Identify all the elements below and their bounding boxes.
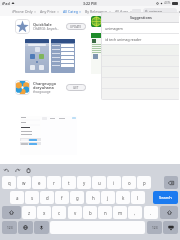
staticText: b	[89, 210, 92, 216]
button[interactable]: Search	[153, 191, 178, 204]
staticText: iPad	[2, 1, 10, 6]
staticText: 3:22 PM	[83, 1, 97, 6]
staticText: k	[122, 195, 125, 201]
button[interactable]	[25, 39, 49, 73]
button[interactable]	[102, 56, 179, 67]
button[interactable]	[20, 116, 77, 155]
button[interactable]: unimag	[143, 8, 177, 15]
staticText: Search	[159, 195, 172, 200]
button[interactable]	[51, 39, 75, 73]
button[interactable]: Numbers	[147, 221, 162, 234]
button[interactable]	[102, 78, 179, 89]
button[interactable]: Any Price	[40, 9, 59, 14]
staticText: All Ages	[115, 9, 129, 14]
staticText: r	[53, 180, 55, 186]
staticText: x	[43, 210, 46, 216]
button[interactable]: unimagem	[102, 23, 179, 34]
button[interactable]: b	[83, 206, 97, 219]
button[interactable]: d	[40, 191, 54, 204]
button[interactable]: h	[86, 191, 100, 204]
staticText: id tech unimag reader	[105, 37, 142, 42]
staticText: h	[92, 195, 95, 201]
button[interactable]: n	[98, 206, 112, 219]
button[interactable]: g	[70, 191, 84, 204]
button[interactable]: Numbers	[2, 221, 17, 234]
staticText: o	[128, 180, 131, 186]
button[interactable]: u	[92, 176, 106, 189]
staticText: By Relevance	[85, 9, 108, 14]
button[interactable]: j	[101, 191, 115, 204]
staticText: n	[104, 210, 107, 216]
staticText: ,	[134, 210, 136, 216]
button[interactable]: o	[122, 176, 136, 189]
button[interactable]: GET	[66, 84, 86, 91]
button[interactable]	[102, 67, 179, 78]
staticText: unimag	[149, 9, 162, 14]
button[interactable]: k	[116, 191, 130, 204]
button[interactable]: z	[22, 206, 36, 219]
staticText: c	[58, 210, 61, 216]
button[interactable]	[102, 89, 179, 100]
staticText: Suggestions	[130, 15, 152, 20]
button[interactable]: id tech unimag reader	[102, 34, 179, 45]
button[interactable]: ,	[128, 206, 142, 219]
button[interactable]: Shift	[2, 206, 21, 219]
staticText: iPhone Only	[12, 9, 33, 14]
staticText: d	[46, 195, 49, 201]
staticText: thacgouoge	[33, 90, 51, 94]
staticText: w	[22, 180, 26, 186]
button[interactable]: Undo	[3, 167, 10, 174]
staticText: q	[8, 180, 11, 186]
button[interactable]: QuickSale	[0, 18, 92, 34]
button[interactable]: l	[131, 191, 145, 204]
button[interactable]: iPhone Only	[12, 9, 36, 14]
button[interactable]: s	[25, 191, 39, 204]
button[interactable]: Backspace	[164, 176, 178, 189]
staticText: l	[137, 195, 139, 201]
button[interactable]: t	[62, 176, 76, 189]
button[interactable]: Emoji	[18, 221, 33, 234]
button[interactable]: Hide keyboard	[163, 221, 178, 234]
button[interactable]: Chargeuygo doryuhana	[0, 79, 92, 95]
staticText: QuickSale	[33, 22, 52, 27]
button[interactable]: v	[68, 206, 82, 219]
button[interactable]: .	[144, 206, 158, 219]
staticText: y	[83, 180, 86, 186]
button[interactable]: p	[137, 176, 151, 189]
button[interactable]: f	[55, 191, 69, 204]
staticText: u	[98, 180, 101, 186]
button[interactable]: Paste	[25, 167, 32, 174]
button[interactable]: q	[2, 176, 16, 189]
staticText: Any Price	[40, 9, 56, 14]
staticText: CHARGE: Anywh…	[33, 27, 60, 31]
button[interactable]: All Categ	[63, 9, 81, 14]
button[interactable]: Dictate	[34, 221, 49, 234]
button[interactable]: x	[37, 206, 51, 219]
staticText: unimagem	[105, 26, 123, 31]
staticText: All Categ	[63, 9, 78, 14]
button[interactable]: c	[52, 206, 66, 219]
button[interactable]: Shift	[160, 206, 178, 219]
staticText: j	[107, 195, 109, 201]
staticText: 123	[152, 226, 158, 230]
button[interactable]: w	[17, 176, 31, 189]
staticText: g	[76, 195, 79, 201]
button[interactable]: All Ages	[115, 9, 132, 14]
staticText: v	[74, 210, 77, 216]
button[interactable]: e	[32, 176, 46, 189]
button[interactable]: i	[107, 176, 121, 189]
button[interactable]: r	[47, 176, 61, 189]
button[interactable]: By Relevance	[85, 9, 111, 14]
button[interactable]	[132, 9, 141, 14]
button[interactable]: y	[77, 176, 91, 189]
staticText: GET	[73, 86, 79, 90]
button[interactable]: a	[10, 191, 24, 204]
staticText: a	[16, 195, 19, 201]
button[interactable]: UPDATE	[66, 23, 86, 30]
button[interactable]: m	[113, 206, 127, 219]
staticText: 43%	[164, 1, 171, 5]
button[interactable]	[102, 45, 179, 56]
button[interactable]: More	[179, 9, 180, 14]
button[interactable]: Redo	[14, 167, 21, 174]
